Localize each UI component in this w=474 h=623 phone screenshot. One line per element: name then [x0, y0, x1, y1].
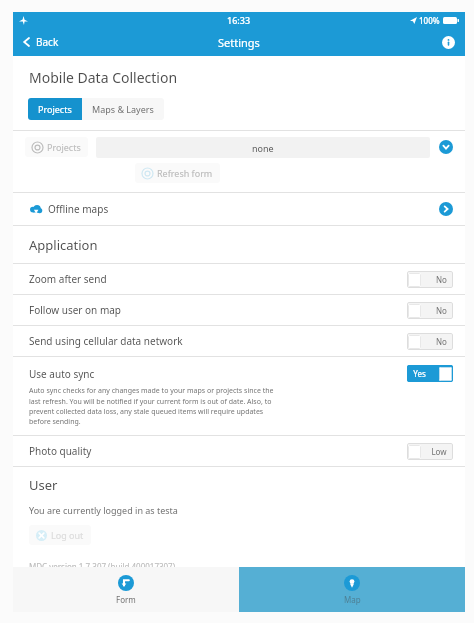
staticText: 100%	[419, 15, 440, 26]
staticText: Yes	[413, 368, 426, 379]
button[interactable]: Map	[239, 567, 465, 612]
button[interactable]: No	[407, 302, 453, 319]
staticText: Refresh form	[157, 167, 213, 179]
button[interactable]: Log out	[29, 525, 91, 545]
staticText: Settings	[218, 35, 260, 50]
button[interactable]: Maps & Layers	[82, 98, 164, 120]
staticText: Maps & Layers	[92, 103, 154, 115]
staticText: User	[29, 476, 58, 494]
button[interactable]: Back	[13, 31, 69, 53]
staticText: Map	[344, 594, 361, 605]
staticText: Application	[29, 236, 98, 254]
staticText: Log out	[51, 529, 84, 541]
staticText: No	[436, 274, 447, 285]
staticText: Form	[116, 594, 136, 605]
staticText: You are currently logged in as testa	[29, 504, 178, 516]
staticText: MDC version 1.7.307 (build 400017307).	[29, 561, 178, 567]
staticText: Offline maps	[48, 202, 109, 216]
staticText: Low	[431, 446, 447, 457]
staticText: none	[252, 142, 274, 154]
button[interactable]: Expand	[437, 138, 455, 156]
staticText: Auto sync checks for any changes made to…	[29, 386, 275, 426]
button[interactable]: Zoom after send	[13, 264, 465, 294]
button[interactable]: Projects	[25, 137, 88, 157]
button[interactable]: Offline maps	[13, 193, 465, 225]
button[interactable]: Send using cellular data network	[13, 326, 465, 356]
staticText: Use auto sync	[29, 367, 95, 381]
staticText: No	[436, 336, 447, 347]
staticText: Mobile Data Collection	[29, 68, 178, 87]
staticText: Photo quality	[29, 444, 92, 458]
button[interactable]: Refresh form	[135, 163, 220, 183]
button[interactable]: No	[407, 271, 453, 288]
staticText: 16:33	[227, 14, 251, 26]
button[interactable]: none	[96, 137, 430, 158]
button[interactable]: Form	[13, 567, 239, 612]
button[interactable]: Low	[407, 443, 453, 460]
button[interactable]: No	[407, 333, 453, 350]
button[interactable]: Use auto sync	[13, 357, 465, 435]
staticText: Follow user on map	[29, 303, 121, 317]
button[interactable]: Info	[439, 33, 457, 51]
staticText: Back	[36, 35, 59, 49]
button[interactable]: Projects	[28, 98, 82, 120]
staticText: Projects	[38, 103, 72, 115]
button[interactable]: Follow user on map	[13, 295, 465, 325]
button[interactable]: Photo quality	[13, 436, 465, 466]
staticText: Projects	[47, 141, 81, 153]
staticText: Send using cellular data network	[29, 334, 183, 348]
staticText: Zoom after send	[29, 272, 107, 286]
button[interactable]: Yes	[407, 365, 453, 382]
staticText: No	[436, 305, 447, 316]
